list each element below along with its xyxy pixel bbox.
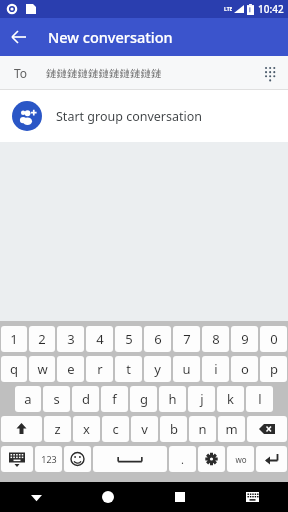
button[interactable]: i xyxy=(202,356,229,382)
button[interactable]: l xyxy=(246,386,273,412)
button[interactable]: m xyxy=(218,416,245,442)
button[interactable]: Back xyxy=(0,18,38,56)
button[interactable]: Home xyxy=(72,482,144,512)
staticText: c xyxy=(112,420,119,438)
staticText: w xyxy=(37,360,48,378)
staticText: j xyxy=(200,390,204,408)
button[interactable]: h xyxy=(159,386,186,412)
button[interactable]: p xyxy=(260,356,287,382)
staticText: i xyxy=(214,360,218,378)
staticText: n xyxy=(198,420,207,438)
button[interactable]: z xyxy=(44,416,71,442)
button[interactable]: Switch keyboard xyxy=(1,446,33,472)
staticText: u xyxy=(182,360,191,378)
button[interactable]: q xyxy=(1,356,27,382)
staticText: 10:42 xyxy=(258,2,284,16)
staticText: 1 xyxy=(10,330,18,348)
staticText: k xyxy=(227,390,234,408)
button[interactable]: a xyxy=(15,386,41,412)
button[interactable]: 0 xyxy=(260,326,287,352)
button[interactable]: 123 xyxy=(35,446,62,472)
button[interactable]: y xyxy=(144,356,171,382)
button[interactable]: w xyxy=(29,356,55,382)
staticText: . xyxy=(181,452,184,467)
button[interactable]: 7 xyxy=(173,326,200,352)
button[interactable]: n xyxy=(189,416,216,442)
button[interactable]: x xyxy=(73,416,100,442)
button[interactable]: Emoji xyxy=(64,446,91,472)
staticText: s xyxy=(53,390,60,408)
button[interactable]: 4 xyxy=(86,326,113,352)
staticText: v xyxy=(141,420,148,438)
button[interactable]: Recents xyxy=(144,482,216,512)
button[interactable]: Start group conversation xyxy=(0,90,288,142)
staticText: t xyxy=(126,360,131,378)
button[interactable]: 9 xyxy=(231,326,258,352)
staticText: 7 xyxy=(183,330,191,348)
button[interactable]: j xyxy=(188,386,215,412)
staticText: l xyxy=(258,390,262,408)
staticText: o xyxy=(241,360,249,378)
staticText: p xyxy=(270,360,278,378)
staticText: e xyxy=(67,360,75,378)
button[interactable]: t xyxy=(115,356,142,382)
button[interactable]: Dialpad xyxy=(254,56,288,90)
button[interactable]: 8 xyxy=(202,326,229,352)
staticText: 4 xyxy=(96,330,104,348)
button[interactable]: 2 xyxy=(29,326,55,352)
button[interactable]: o xyxy=(231,356,258,382)
staticText: f xyxy=(112,390,117,408)
button[interactable]: b xyxy=(160,416,187,442)
staticText: m xyxy=(225,420,238,438)
button[interactable]: s xyxy=(43,386,70,412)
staticText: To xyxy=(14,65,28,81)
button[interactable]: 6 xyxy=(144,326,171,352)
staticText: wo xyxy=(235,454,247,465)
staticText: 6 xyxy=(154,330,162,348)
button[interactable]: Enter xyxy=(256,446,287,472)
button[interactable]: 5 xyxy=(115,326,142,352)
button[interactable]: Settings xyxy=(198,446,225,472)
button[interactable]: c xyxy=(102,416,129,442)
button[interactable]: 1 xyxy=(1,326,27,352)
staticText: New conversation xyxy=(48,27,173,47)
button[interactable]: wo xyxy=(227,446,254,472)
staticText: 5 xyxy=(125,330,133,348)
staticText: 123 xyxy=(41,453,57,465)
staticText: 8 xyxy=(212,330,220,348)
button[interactable]: Backspace xyxy=(247,416,287,442)
button[interactable]: r xyxy=(86,356,113,382)
staticText: a xyxy=(24,390,32,408)
button[interactable]: g xyxy=(130,386,157,412)
staticText: 3 xyxy=(67,330,75,348)
staticText: LTE xyxy=(224,6,233,13)
button[interactable]: d xyxy=(72,386,99,412)
button[interactable]: Shift xyxy=(1,416,42,442)
button[interactable]: u xyxy=(173,356,200,382)
button[interactable]: e xyxy=(57,356,84,382)
button[interactable]: To xyxy=(0,56,288,90)
button[interactable]: k xyxy=(217,386,244,412)
staticText: x xyxy=(83,420,90,438)
staticText: 0 xyxy=(270,330,278,348)
staticText: q xyxy=(10,360,18,378)
staticText: d xyxy=(82,390,90,408)
button[interactable]: f xyxy=(101,386,128,412)
staticText: Start group conversation xyxy=(56,108,203,125)
staticText: y xyxy=(154,360,161,378)
button[interactable]: Change keyboard xyxy=(216,482,288,512)
staticText: r xyxy=(97,360,103,378)
staticText: 2 xyxy=(38,330,46,348)
button[interactable]: Back xyxy=(0,482,72,512)
staticText: z xyxy=(54,420,61,438)
staticText: h xyxy=(168,390,177,408)
button[interactable]: v xyxy=(131,416,158,442)
staticText: 鏈鏈鏈鏈鏈鏈鏈鏈鏈鏈鏈 xyxy=(46,67,162,80)
staticText: 9 xyxy=(241,330,249,348)
staticText: b xyxy=(170,420,178,438)
button[interactable]: Space xyxy=(93,446,167,472)
button[interactable]: . xyxy=(169,446,196,472)
staticText: g xyxy=(140,390,148,408)
button[interactable]: 3 xyxy=(57,326,84,352)
